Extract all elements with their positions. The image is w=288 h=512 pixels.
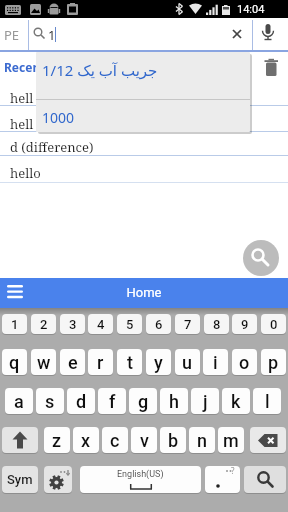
button[interactable]: 2: [31, 314, 56, 334]
staticText: 14:04: [237, 3, 265, 16]
staticText: f: [109, 391, 116, 412]
button[interactable]: j: [191, 388, 219, 414]
staticText: i: [213, 352, 218, 373]
button[interactable]: [263, 58, 279, 78]
button[interactable]: v: [131, 427, 157, 453]
staticText: 0: [270, 317, 278, 332]
staticText: c: [110, 430, 120, 451]
staticText: k: [231, 391, 241, 412]
staticText: Recent: [4, 59, 46, 75]
button[interactable]: 1/12 یک‎ آب‎ جریب: [42, 60, 158, 80]
button[interactable]: English(US): [80, 466, 201, 493]
button[interactable]: 3: [60, 314, 85, 334]
button[interactable]: [2, 427, 38, 453]
button[interactable]: d: [67, 388, 95, 414]
staticText: g: [138, 391, 149, 412]
button[interactable]: 1000: [42, 108, 75, 127]
staticText: o: [239, 352, 250, 373]
button[interactable]: f: [98, 388, 126, 414]
staticText: u: [182, 352, 193, 373]
button[interactable]: Home: [0, 278, 288, 308]
staticText: 3: [69, 317, 77, 332]
staticText: 1: [11, 317, 19, 332]
button[interactable]: t: [117, 349, 142, 375]
staticText: r: [97, 352, 104, 373]
staticText: w: [37, 352, 51, 373]
button[interactable]: p: [261, 349, 286, 375]
staticText: ?: [231, 466, 235, 476]
staticText: 7: [184, 317, 192, 332]
button[interactable]: n: [189, 427, 215, 453]
staticText: English(US): [117, 469, 164, 480]
button[interactable]: g: [129, 388, 157, 414]
staticText: 9: [241, 317, 249, 332]
staticText: 8: [213, 317, 221, 332]
staticText: 6: [155, 317, 163, 332]
button[interactable]: 5: [117, 314, 142, 334]
button[interactable]: m: [218, 427, 244, 453]
staticText: n: [197, 430, 208, 451]
button[interactable]: [44, 466, 72, 493]
button[interactable]: 7: [175, 314, 200, 334]
button[interactable]: 8: [204, 314, 229, 334]
button[interactable]: b: [160, 427, 186, 453]
button[interactable]: z: [44, 427, 70, 453]
staticText: v: [140, 430, 149, 451]
button[interactable]: [250, 427, 286, 453]
button[interactable]: 4: [88, 314, 113, 334]
staticText: q: [9, 352, 20, 373]
button[interactable]: hell: [10, 89, 34, 107]
button[interactable]: [232, 29, 242, 39]
staticText: h: [169, 391, 179, 412]
button[interactable]: x: [73, 427, 99, 453]
button[interactable]: PE: [0, 18, 288, 50]
button[interactable]: ?: [205, 466, 240, 493]
button[interactable]: r: [88, 349, 113, 375]
button[interactable]: o: [232, 349, 257, 375]
staticText: b: [168, 430, 179, 451]
staticText: 4: [97, 317, 105, 332]
staticText: j: [203, 391, 208, 412]
staticText: z: [52, 430, 62, 451]
staticText: 5: [126, 317, 134, 332]
staticText: y: [154, 352, 163, 373]
button[interactable]: s: [36, 388, 64, 414]
staticText: Sym: [7, 472, 33, 487]
button[interactable]: w: [31, 349, 56, 375]
staticText: p: [268, 352, 279, 373]
button[interactable]: 6: [146, 314, 171, 334]
staticText: s: [45, 391, 55, 412]
button[interactable]: [243, 240, 279, 276]
button[interactable]: h: [160, 388, 188, 414]
button[interactable]: l: [253, 388, 281, 414]
staticText: PE: [4, 26, 20, 44]
staticText: Home: [0, 285, 288, 300]
button[interactable]: hello: [10, 164, 41, 182]
button[interactable]: [261, 24, 275, 44]
button[interactable]: e: [60, 349, 85, 375]
button[interactable]: q: [2, 349, 27, 375]
button[interactable]: a: [5, 388, 33, 414]
button[interactable]: 1: [2, 314, 27, 334]
button[interactable]: u: [175, 349, 200, 375]
staticText: x: [81, 430, 91, 451]
button[interactable]: Sym: [2, 466, 38, 493]
button[interactable]: hell: [10, 115, 34, 133]
button[interactable]: 0: [261, 314, 286, 334]
button[interactable]: k: [222, 388, 250, 414]
button[interactable]: d (difference): [10, 138, 94, 156]
staticText: d: [76, 391, 87, 412]
staticText: 1: [48, 26, 56, 44]
staticText: 2: [40, 317, 48, 332]
button[interactable]: i: [203, 349, 228, 375]
staticText: l: [265, 391, 270, 412]
staticText: t: [127, 352, 133, 373]
button[interactable]: c: [102, 427, 128, 453]
staticText: m: [223, 430, 239, 451]
button[interactable]: y: [146, 349, 171, 375]
button[interactable]: 9: [232, 314, 257, 334]
staticText: e: [68, 352, 78, 373]
button[interactable]: [244, 466, 286, 493]
staticText: a: [14, 391, 24, 412]
